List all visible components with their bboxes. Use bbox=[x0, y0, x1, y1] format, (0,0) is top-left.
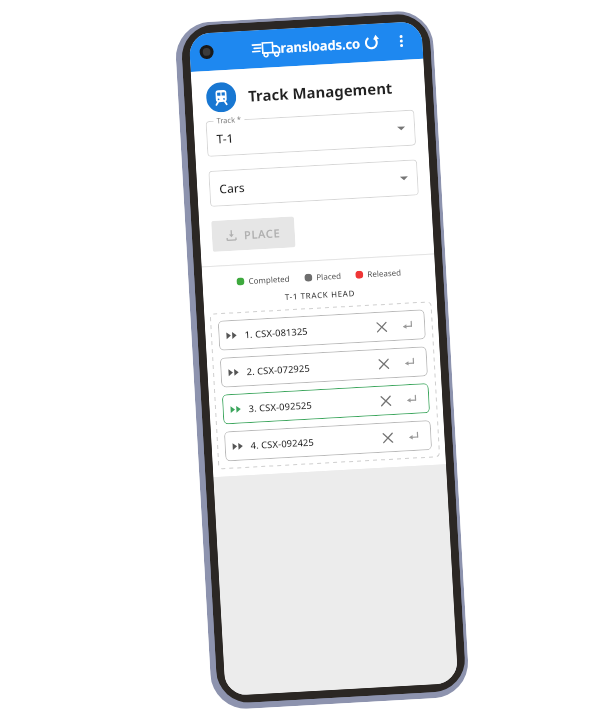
button[interactable]: 2. CSX-072925 bbox=[220, 346, 428, 388]
button[interactable]: 4. CSX-092425 bbox=[224, 420, 432, 461]
button[interactable]: Confirm car bbox=[397, 315, 418, 336]
button[interactable]: Cars bbox=[208, 159, 419, 207]
staticText: Cars bbox=[219, 179, 246, 196]
button[interactable]: PLACE bbox=[211, 216, 296, 252]
button[interactable]: More options bbox=[388, 27, 415, 55]
button[interactable]: Confirm car bbox=[401, 388, 422, 410]
staticText: Track Management bbox=[248, 78, 393, 106]
button[interactable]: Confirm car bbox=[403, 425, 424, 447]
staticText: T-1 TRACK HEAD bbox=[203, 282, 436, 306]
staticText: Completed bbox=[248, 273, 291, 286]
staticText: ransloads.co bbox=[280, 34, 361, 57]
staticText: 2. CSX-072925 bbox=[246, 362, 311, 378]
staticText: T-1 bbox=[216, 130, 234, 146]
button[interactable]: T-1 bbox=[205, 109, 416, 157]
staticText: 4. CSX-092425 bbox=[250, 436, 315, 452]
staticText: Released bbox=[367, 266, 402, 279]
button[interactable]: Remove car bbox=[371, 316, 392, 337]
button[interactable]: 1. CSX-081325 bbox=[218, 309, 426, 351]
button[interactable]: Refresh bbox=[358, 29, 385, 56]
button[interactable]: Remove car bbox=[375, 390, 396, 411]
button[interactable]: Confirm car bbox=[399, 352, 420, 373]
staticText: 3. CSX-092525 bbox=[248, 399, 313, 415]
button[interactable]: Remove car bbox=[373, 353, 394, 374]
staticText: PLACE bbox=[243, 225, 281, 242]
staticText: Placed bbox=[316, 270, 342, 282]
button[interactable]: Remove car bbox=[377, 427, 398, 448]
staticText: 1. CSX-081325 bbox=[244, 325, 309, 341]
staticText: Track * bbox=[216, 114, 242, 125]
button[interactable]: 3. CSX-092525 bbox=[222, 383, 430, 425]
